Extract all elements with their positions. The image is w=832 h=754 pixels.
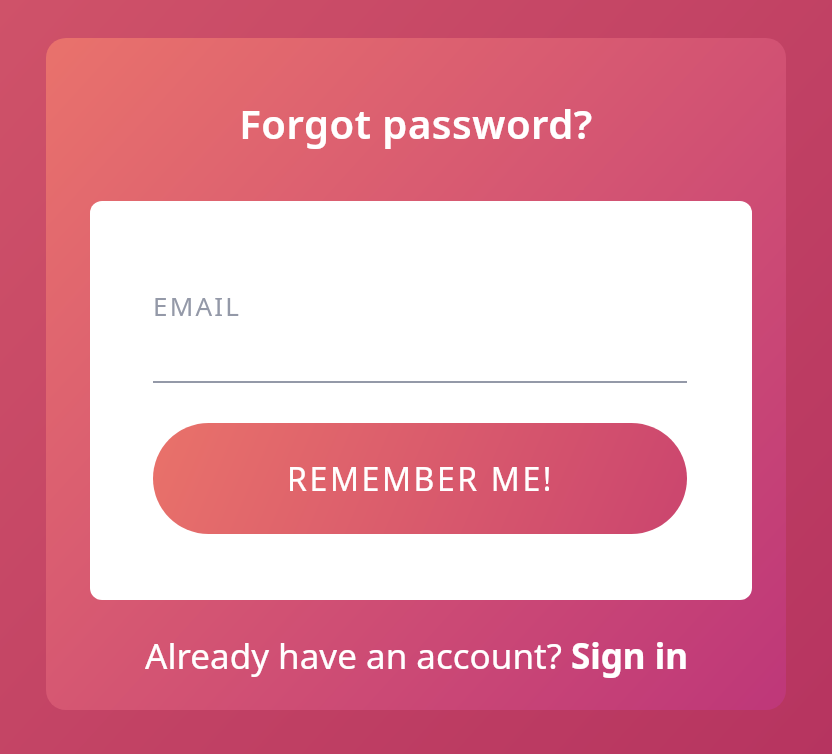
button[interactable]: Already have an account? Sign in <box>46 626 786 686</box>
staticText: REMEMBER ME! <box>287 457 554 501</box>
button[interactable]: EMAIL <box>153 284 687 326</box>
button[interactable]: REMEMBER ME! <box>153 423 687 534</box>
staticText: Forgot password? <box>46 96 786 150</box>
staticText: Already have an account? Sign in <box>145 632 688 680</box>
staticText: EMAIL <box>153 288 242 323</box>
